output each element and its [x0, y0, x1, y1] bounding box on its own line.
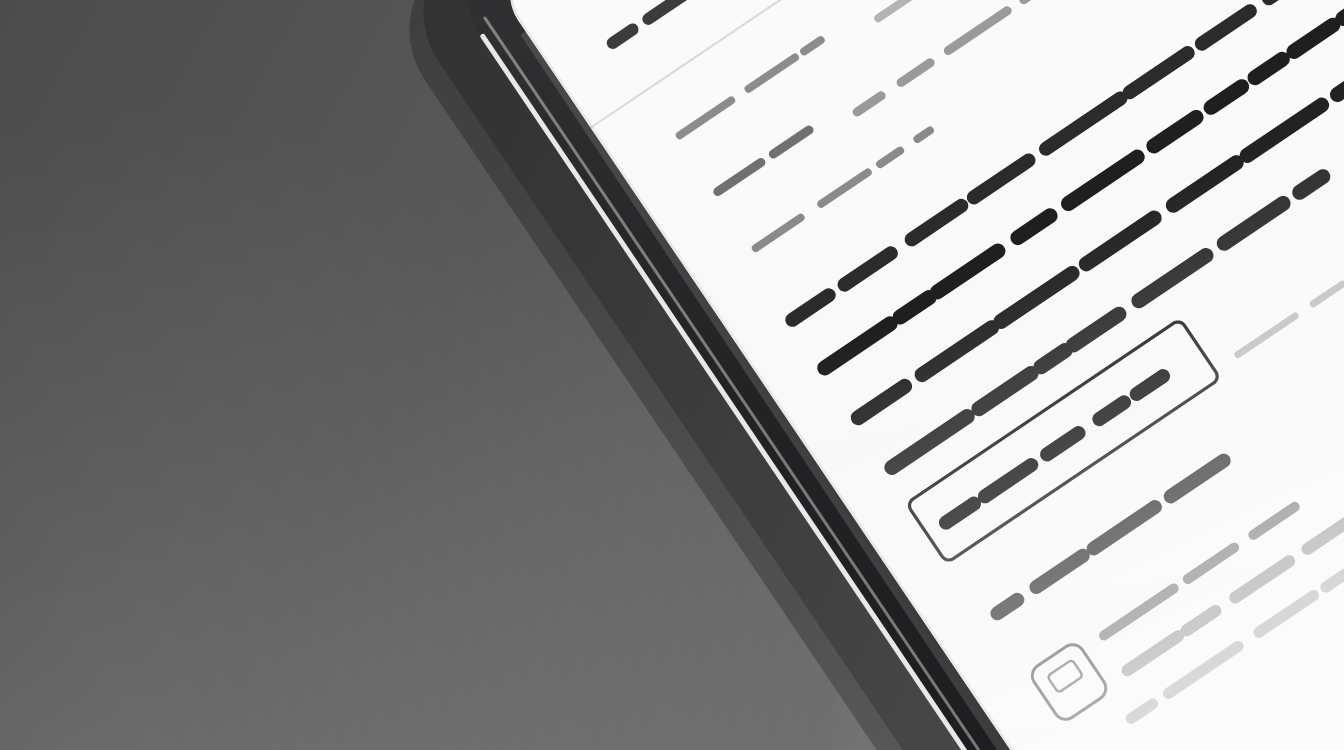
button[interactable]: Phone screen content [0, 0, 1344, 750]
